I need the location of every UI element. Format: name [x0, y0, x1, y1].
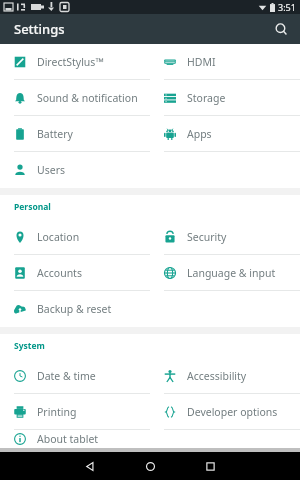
- button[interactable]: Apps: [150, 116, 300, 151]
- staticText: Printing: [37, 405, 77, 419]
- button[interactable]: Back: [60, 452, 120, 480]
- staticText: Battery: [37, 127, 73, 141]
- button[interactable]: Storage: [150, 80, 300, 115]
- button[interactable]: Accounts: [0, 255, 150, 290]
- button[interactable]: Backup & reset: [0, 291, 150, 326]
- button[interactable]: Date & time: [0, 358, 150, 393]
- staticText: Sound & notification: [37, 91, 138, 105]
- button[interactable]: Sound & notification: [0, 80, 150, 115]
- staticText: Accounts: [37, 266, 82, 280]
- staticText: Backup & reset: [37, 302, 112, 316]
- button[interactable]: Recent apps: [180, 452, 240, 480]
- staticText: HDMI: [187, 55, 216, 69]
- button[interactable]: Developer options: [150, 394, 300, 429]
- button[interactable]: HDMI: [150, 44, 300, 79]
- staticText: Developer options: [187, 405, 278, 419]
- staticText: Settings: [14, 20, 65, 38]
- staticText: 3:51: [278, 1, 296, 13]
- staticText: Accessibility: [187, 369, 247, 383]
- staticText: Users: [37, 163, 65, 177]
- button[interactable]: Location: [0, 219, 150, 254]
- button[interactable]: Printing: [0, 394, 150, 429]
- button[interactable]: Battery: [0, 116, 150, 151]
- button[interactable]: Home: [120, 452, 180, 480]
- button[interactable]: Search: [268, 16, 294, 42]
- staticText: Apps: [187, 127, 212, 141]
- staticText: Storage: [187, 91, 226, 105]
- button[interactable]: Users: [0, 152, 150, 187]
- button[interactable]: DirectStylus™: [0, 44, 150, 79]
- button[interactable]: Language & input: [150, 255, 300, 290]
- button[interactable]: Accessibility: [150, 358, 300, 393]
- staticText: Location: [37, 230, 80, 244]
- staticText: Date & time: [37, 369, 96, 383]
- staticText: Security: [187, 230, 227, 244]
- staticText: DirectStylus™: [37, 55, 104, 69]
- staticText: Language & input: [187, 266, 276, 280]
- button[interactable]: Security: [150, 219, 300, 254]
- staticText: About tablet: [37, 432, 99, 446]
- staticText: Personal: [14, 201, 51, 213]
- staticText: System: [14, 340, 45, 352]
- button[interactable]: About tablet: [0, 430, 150, 448]
